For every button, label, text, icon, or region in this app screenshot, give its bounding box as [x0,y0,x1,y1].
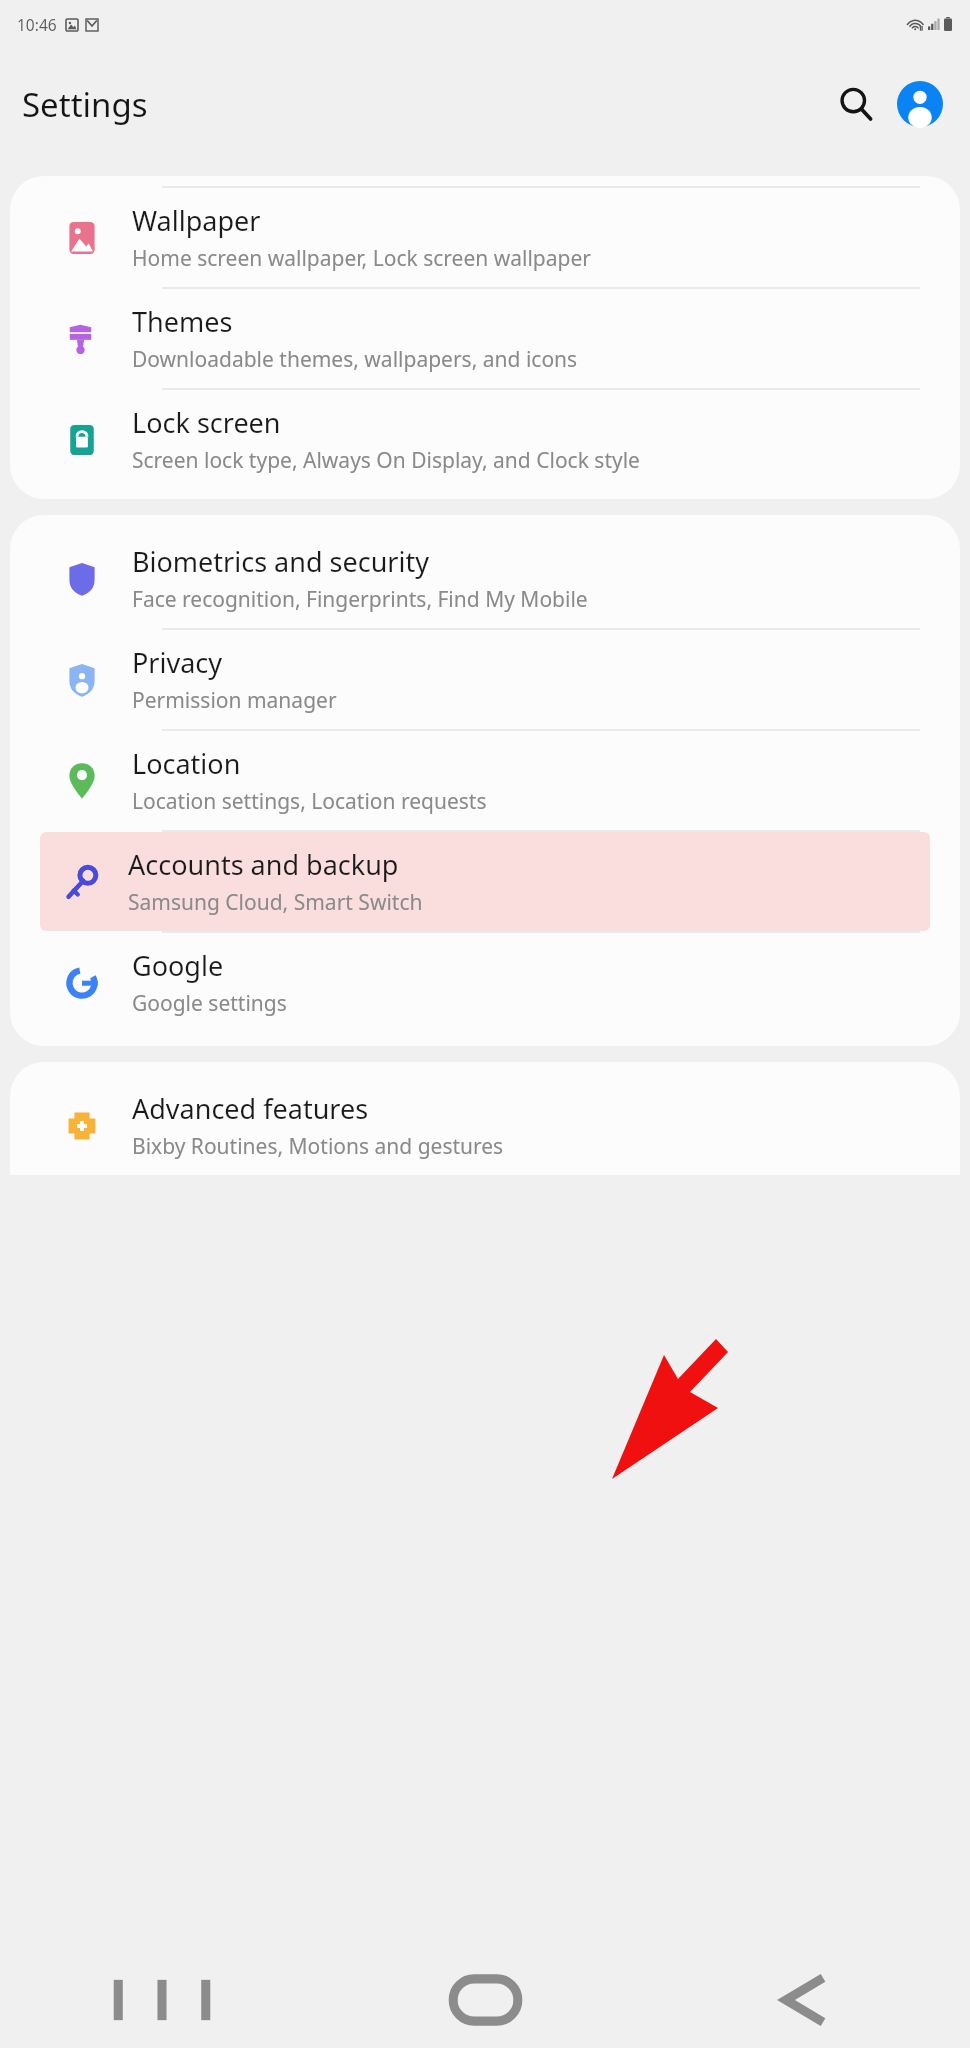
staticText: Face recognition, Fingerprints, Find My … [132,585,588,614]
button[interactable]: Recents [0,1952,324,2048]
staticText: Settings [22,82,148,127]
button[interactable]: Themes [10,289,960,388]
staticText: Location settings, Location requests [132,787,487,816]
staticText: Home screen wallpaper, Lock screen wallp… [132,244,591,273]
staticText: Accounts and backup [128,846,399,883]
staticText: Location [132,745,241,782]
staticText: Google [132,947,224,984]
button[interactable]: Home [324,1952,647,2048]
staticText: Wallpaper [132,202,261,239]
button[interactable]: Privacy [10,630,960,729]
button[interactable]: Biometrics and security [10,529,960,628]
button[interactable]: Wallpaper [10,188,960,287]
staticText: Biometrics and security [132,543,429,580]
staticText: Privacy [132,644,223,681]
staticText: Google settings [132,989,287,1018]
staticText: Lock screen [132,404,281,441]
staticText: Advanced features [132,1090,369,1127]
button[interactable]: Location [10,731,960,830]
button[interactable]: Lock screen [10,390,960,489]
button[interactable]: Account [892,76,948,132]
staticText: Downloadable themes, wallpapers, and ico… [132,345,578,374]
staticText: Permission manager [132,686,337,715]
button[interactable]: Accounts and backup [40,832,930,931]
staticText: Screen lock type, Always On Display, and… [132,446,640,475]
button[interactable]: Back [647,1952,970,2048]
staticText: Bixby Routines, Motions and gestures [132,1132,504,1161]
button[interactable]: Google [10,933,960,1032]
button[interactable]: Search [828,76,884,132]
staticText: 10:46 [17,14,57,35]
staticText: Samsung Cloud, Smart Switch [128,888,423,917]
staticText: Themes [132,303,233,340]
button[interactable]: Advanced features [10,1076,960,1175]
